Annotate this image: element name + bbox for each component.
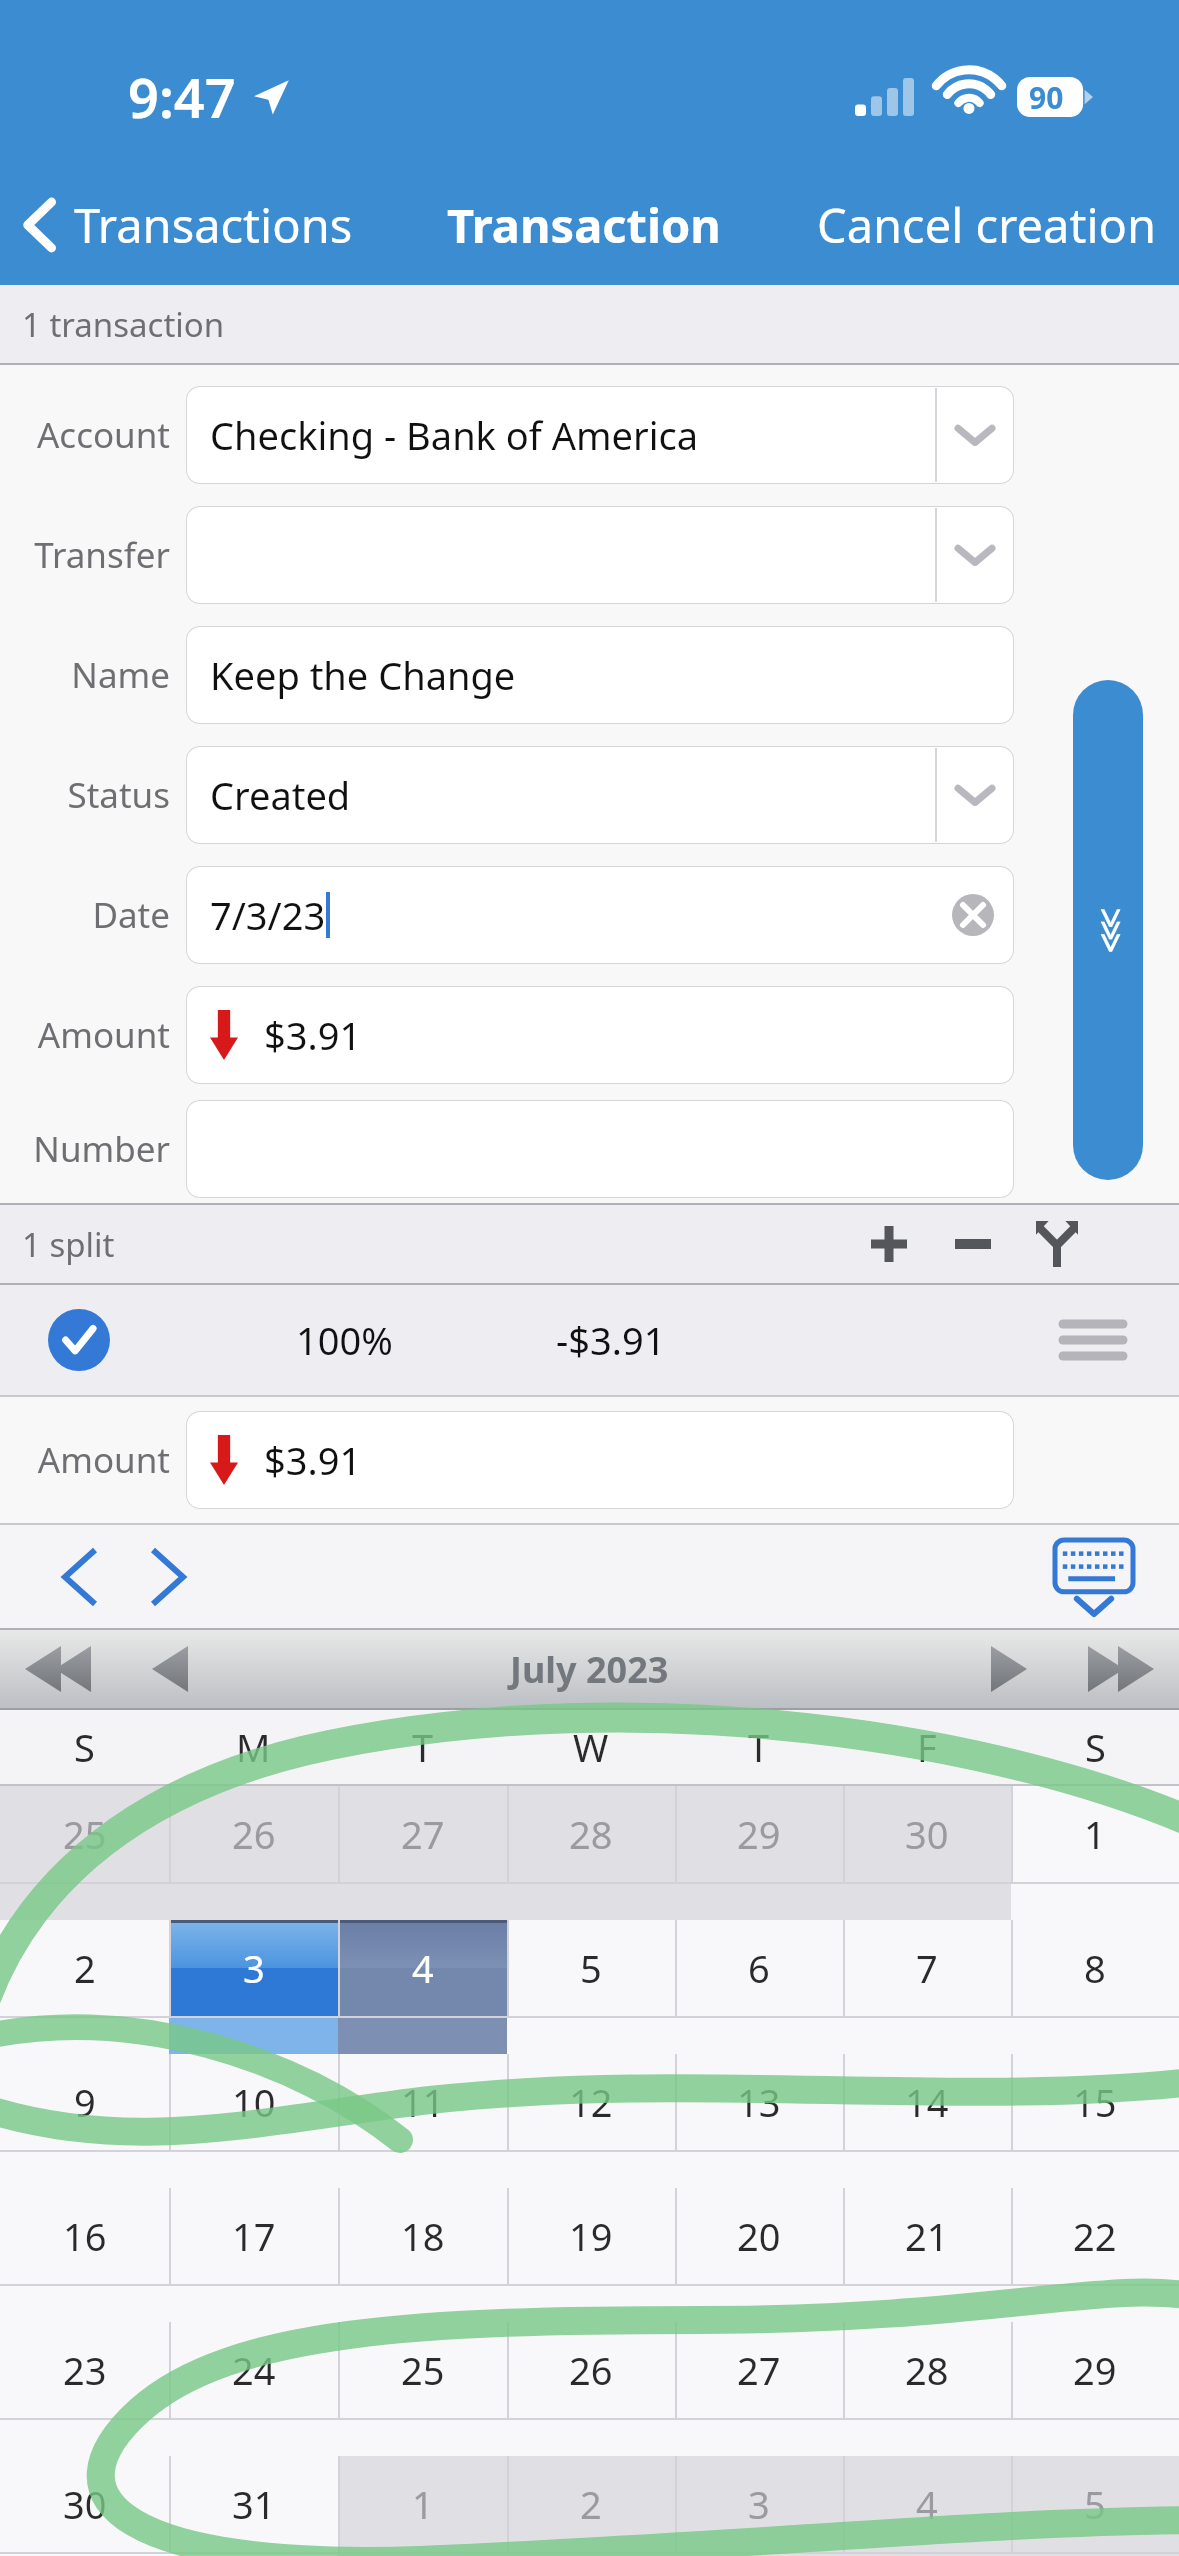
button[interactable]: Previous field (36, 1533, 124, 1621)
staticText: 90 (1029, 77, 1064, 117)
staticText: M (236, 1721, 271, 1773)
button[interactable]: Keep the Change (186, 626, 1014, 724)
button[interactable]: 7/3/23 (186, 866, 1014, 964)
staticText: 2 (580, 2478, 602, 2530)
button[interactable]: 25 (0, 1786, 169, 1882)
button[interactable]: 2 (0, 1920, 169, 2016)
staticText: 1 transaction (22, 302, 225, 347)
button[interactable]: 27 (675, 2322, 843, 2418)
staticText: T (412, 1721, 434, 1773)
staticText: 5 (1084, 2478, 1106, 2530)
button[interactable]: 1 (338, 2456, 507, 2552)
button[interactable] (186, 506, 1014, 604)
button[interactable]: 9 (0, 2054, 169, 2150)
button[interactable]: 29 (675, 1786, 843, 1882)
button[interactable]: 3 (169, 1920, 338, 2016)
button[interactable]: Previous month (136, 1635, 204, 1703)
staticText: Transactions (74, 193, 353, 257)
staticText: 29 (737, 1808, 781, 1860)
staticText: Transfer to (0, 531, 170, 579)
button[interactable]: 26 (507, 2322, 675, 2418)
staticText: $3.91 (264, 1434, 362, 1486)
button[interactable]: $3.91 (186, 1411, 1014, 1509)
button[interactable]: 3 (675, 2456, 843, 2552)
button[interactable]: 24 (169, 2322, 338, 2418)
button[interactable]: 8 (1011, 1920, 1179, 2016)
staticText: 18 (401, 2210, 445, 2262)
staticText: Date (0, 891, 170, 939)
button[interactable]: Next month (975, 1635, 1043, 1703)
button[interactable]: 31 (169, 2456, 338, 2552)
button[interactable]: 30 (843, 1786, 1011, 1882)
staticText: Status (0, 771, 170, 819)
staticText: 31 (232, 2478, 276, 2530)
button[interactable]: 12 (507, 2054, 675, 2150)
staticText: 13 (737, 2076, 781, 2128)
staticText: $3.91 (264, 1009, 362, 1061)
button[interactable]: Created (186, 746, 1014, 844)
button[interactable]: 20 (675, 2188, 843, 2284)
button[interactable]: Show previous transactions (1073, 680, 1143, 1180)
button[interactable]: 28 (843, 2322, 1011, 2418)
button[interactable]: 25 (338, 2322, 507, 2418)
staticText: 20 (737, 2210, 781, 2262)
button[interactable]: 17 (169, 2188, 338, 2284)
button[interactable]: Clear (952, 894, 994, 936)
button[interactable]: 29 (1011, 2322, 1179, 2418)
button[interactable]: Add split (847, 1205, 931, 1283)
button[interactable]: $3.91 (186, 986, 1014, 1084)
staticText: 10 (232, 2076, 276, 2128)
button[interactable]: 4 (338, 1920, 507, 2016)
button[interactable] (186, 1100, 1014, 1198)
button[interactable]: 13 (675, 2054, 843, 2150)
button[interactable]: 23 (0, 2322, 169, 2418)
button[interactable]: Hide keyboard (1047, 1530, 1141, 1624)
button[interactable]: 16 (0, 2188, 169, 2284)
button[interactable]: Split transaction (1015, 1205, 1099, 1283)
staticText: 9:47 (128, 60, 236, 134)
button[interactable]: 22 (1011, 2188, 1179, 2284)
button[interactable]: 11 (338, 2054, 507, 2150)
button[interactable]: 1 (1011, 1786, 1179, 1882)
button[interactable]: 19 (507, 2188, 675, 2284)
button[interactable]: 6 (675, 1920, 843, 2016)
button[interactable]: 26 (169, 1786, 338, 1882)
button[interactable]: 5 (507, 1920, 675, 2016)
button[interactable]: 21 (843, 2188, 1011, 2284)
button[interactable]: 100% (0, 1285, 1179, 1395)
staticText: 26 (232, 1808, 276, 1860)
staticText: Amount (0, 1436, 170, 1484)
staticText: 8 (1084, 1942, 1106, 1994)
staticText: Checking - Bank of America (210, 409, 699, 461)
staticText: 11 (401, 2076, 445, 2128)
staticText: 3 (748, 2478, 770, 2530)
button[interactable]: Transactions (22, 170, 353, 280)
button[interactable]: Cancel creation (817, 170, 1157, 280)
button[interactable]: 15 (1011, 2054, 1179, 2150)
staticText: F (917, 1721, 937, 1773)
staticText: S (74, 1721, 95, 1773)
button[interactable]: Next field (124, 1533, 212, 1621)
staticText: 24 (232, 2344, 276, 2396)
staticText: 1 split (22, 1222, 115, 1267)
staticText: 17 (232, 2210, 276, 2262)
button[interactable]: 28 (507, 1786, 675, 1882)
button[interactable]: 5 (1011, 2456, 1179, 2552)
staticText: 6 (748, 1942, 770, 1994)
staticText: 27 (401, 1808, 445, 1860)
button[interactable]: 18 (338, 2188, 507, 2284)
button[interactable]: 27 (338, 1786, 507, 1882)
staticText: 16 (63, 2210, 107, 2262)
button[interactable]: Previous year (10, 1635, 106, 1703)
button[interactable]: Remove split (931, 1205, 1015, 1283)
button[interactable]: 4 (843, 2456, 1011, 2552)
button[interactable]: 7 (843, 1920, 1011, 2016)
button[interactable]: Next year (1073, 1635, 1169, 1703)
button[interactable]: Checking - Bank of America (186, 386, 1014, 484)
button[interactable]: 2 (507, 2456, 675, 2552)
button[interactable]: 10 (169, 2054, 338, 2150)
button[interactable]: 14 (843, 2054, 1011, 2150)
staticText: 22 (1073, 2210, 1117, 2262)
button[interactable]: 30 (0, 2456, 169, 2552)
staticText: 27 (737, 2344, 781, 2396)
